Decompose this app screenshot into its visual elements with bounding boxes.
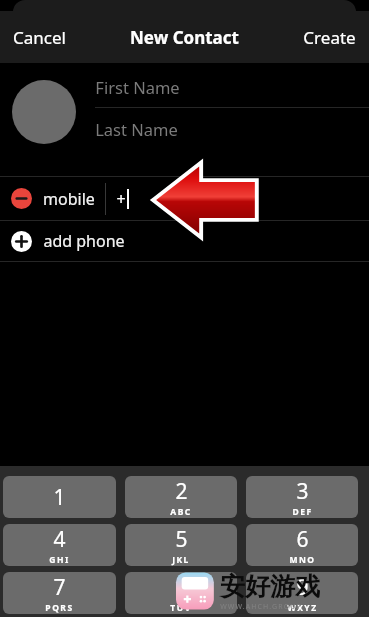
button[interactable]: Remove mobile — [0, 177, 369, 220]
button[interactable]: 1 — [3, 476, 116, 518]
staticText: + — [116, 188, 126, 210]
button[interactable]: 2 — [125, 476, 237, 518]
staticText: 2 — [175, 477, 188, 506]
staticText: GHI — [49, 554, 70, 566]
staticText: 6 — [296, 525, 309, 554]
button[interactable]: Cancel — [0, 16, 78, 59]
button[interactable]: 5 — [125, 524, 237, 566]
staticText: 1 — [53, 483, 66, 512]
staticText: 9 — [296, 573, 309, 602]
staticText: 3 — [296, 477, 309, 506]
staticText: 7 — [53, 573, 66, 602]
staticText: 8 — [175, 573, 188, 602]
button[interactable]: Create — [291, 16, 369, 59]
button[interactable]: Remove mobile — [11, 188, 32, 209]
staticText: 安好游戏 — [220, 571, 320, 602]
staticText: New Contact — [130, 26, 239, 49]
staticText: Last Name — [95, 118, 178, 140]
other: Add phone — [11, 231, 32, 252]
staticText: JKL — [172, 554, 190, 566]
staticText: TUV — [170, 602, 192, 614]
button[interactable]: Add phone — [0, 221, 369, 261]
staticText: DEF — [292, 506, 313, 518]
button[interactable]: 7 — [3, 572, 116, 614]
staticText: WWW.AHCH.GROUP — [220, 602, 302, 612]
staticText: First Name — [95, 76, 180, 98]
button[interactable]: Add photo — [12, 80, 76, 144]
staticText: Create — [303, 26, 356, 49]
staticText: PQRS — [45, 602, 74, 614]
staticText: 5 — [175, 525, 188, 554]
staticText: WXYZ — [287, 602, 318, 614]
button[interactable]: 3 — [246, 476, 358, 518]
button[interactable]: 6 — [246, 524, 358, 566]
staticText: Cancel — [13, 26, 66, 49]
staticText: MNO — [289, 554, 316, 566]
button[interactable]: 8 — [125, 572, 237, 614]
button[interactable]: 4 — [3, 524, 116, 566]
staticText: add phone — [43, 230, 125, 252]
staticText: mobile — [43, 188, 95, 210]
button[interactable]: Last Name — [95, 108, 369, 149]
staticText: ABC — [170, 506, 192, 518]
button[interactable]: Pointer arrow — [153, 161, 258, 239]
button[interactable]: First Name — [95, 66, 369, 107]
staticText: 4 — [53, 525, 66, 554]
button[interactable]: 9 — [246, 572, 358, 614]
